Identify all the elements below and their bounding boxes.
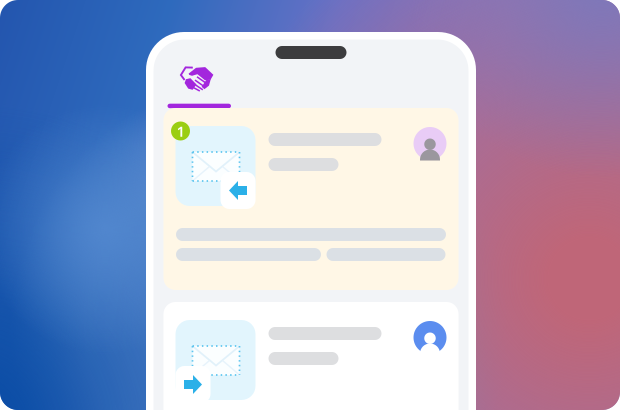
button[interactable]: Referral sent bbox=[163, 302, 458, 410]
staticText: 1 bbox=[176, 121, 184, 141]
button[interactable]: Referral invitation bbox=[163, 108, 458, 290]
button[interactable]: Referrals bbox=[153, 55, 245, 109]
